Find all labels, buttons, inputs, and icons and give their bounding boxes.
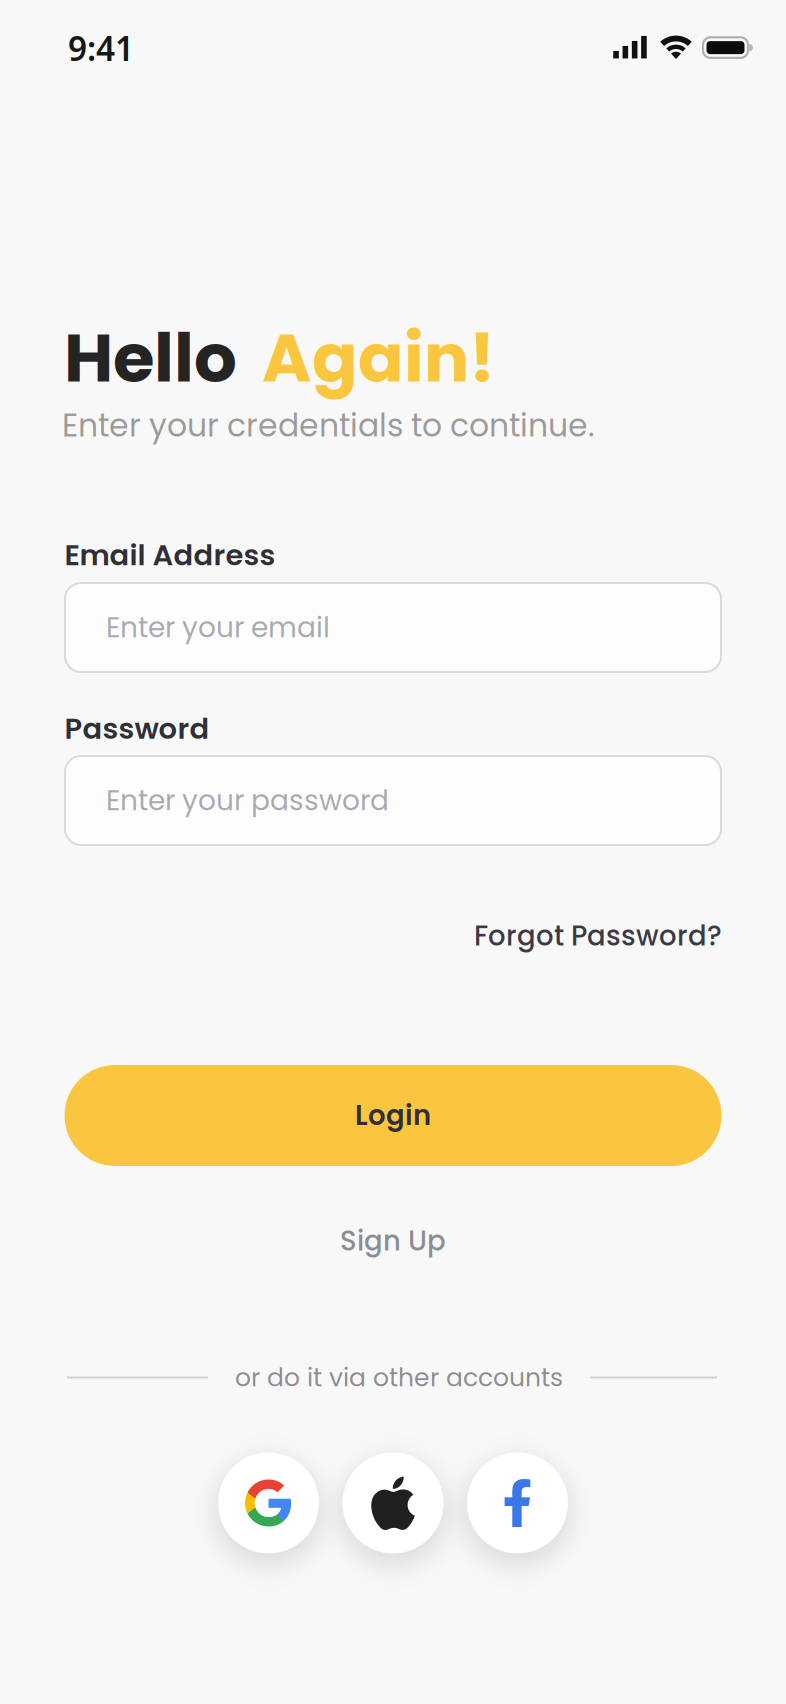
staticText: Email Address bbox=[64, 535, 275, 575]
staticText: 9:41 bbox=[68, 26, 134, 70]
staticText: Login bbox=[355, 1096, 431, 1135]
button[interactable] bbox=[467, 1452, 568, 1553]
button[interactable] bbox=[218, 1452, 319, 1553]
button[interactable]: Sign Up bbox=[340, 1222, 446, 1260]
staticText: Password bbox=[64, 708, 209, 749]
button[interactable] bbox=[342, 1452, 443, 1553]
staticText: Again! bbox=[262, 311, 495, 405]
button[interactable]: Enter your password bbox=[65, 756, 721, 845]
staticText: Forgot Password? bbox=[474, 917, 722, 955]
button[interactable]: Login bbox=[64, 1065, 721, 1166]
button[interactable]: Forgot Password? bbox=[474, 917, 722, 955]
staticText: Sign Up bbox=[340, 1222, 446, 1260]
staticText: Enter your credentials to continue. bbox=[62, 403, 595, 448]
staticText: Enter your email bbox=[106, 608, 330, 647]
staticText: Enter your password bbox=[106, 781, 389, 820]
button[interactable]: Enter your email bbox=[65, 583, 721, 672]
staticText: Hello bbox=[64, 311, 237, 405]
staticText: or do it via other accounts bbox=[235, 1360, 563, 1395]
